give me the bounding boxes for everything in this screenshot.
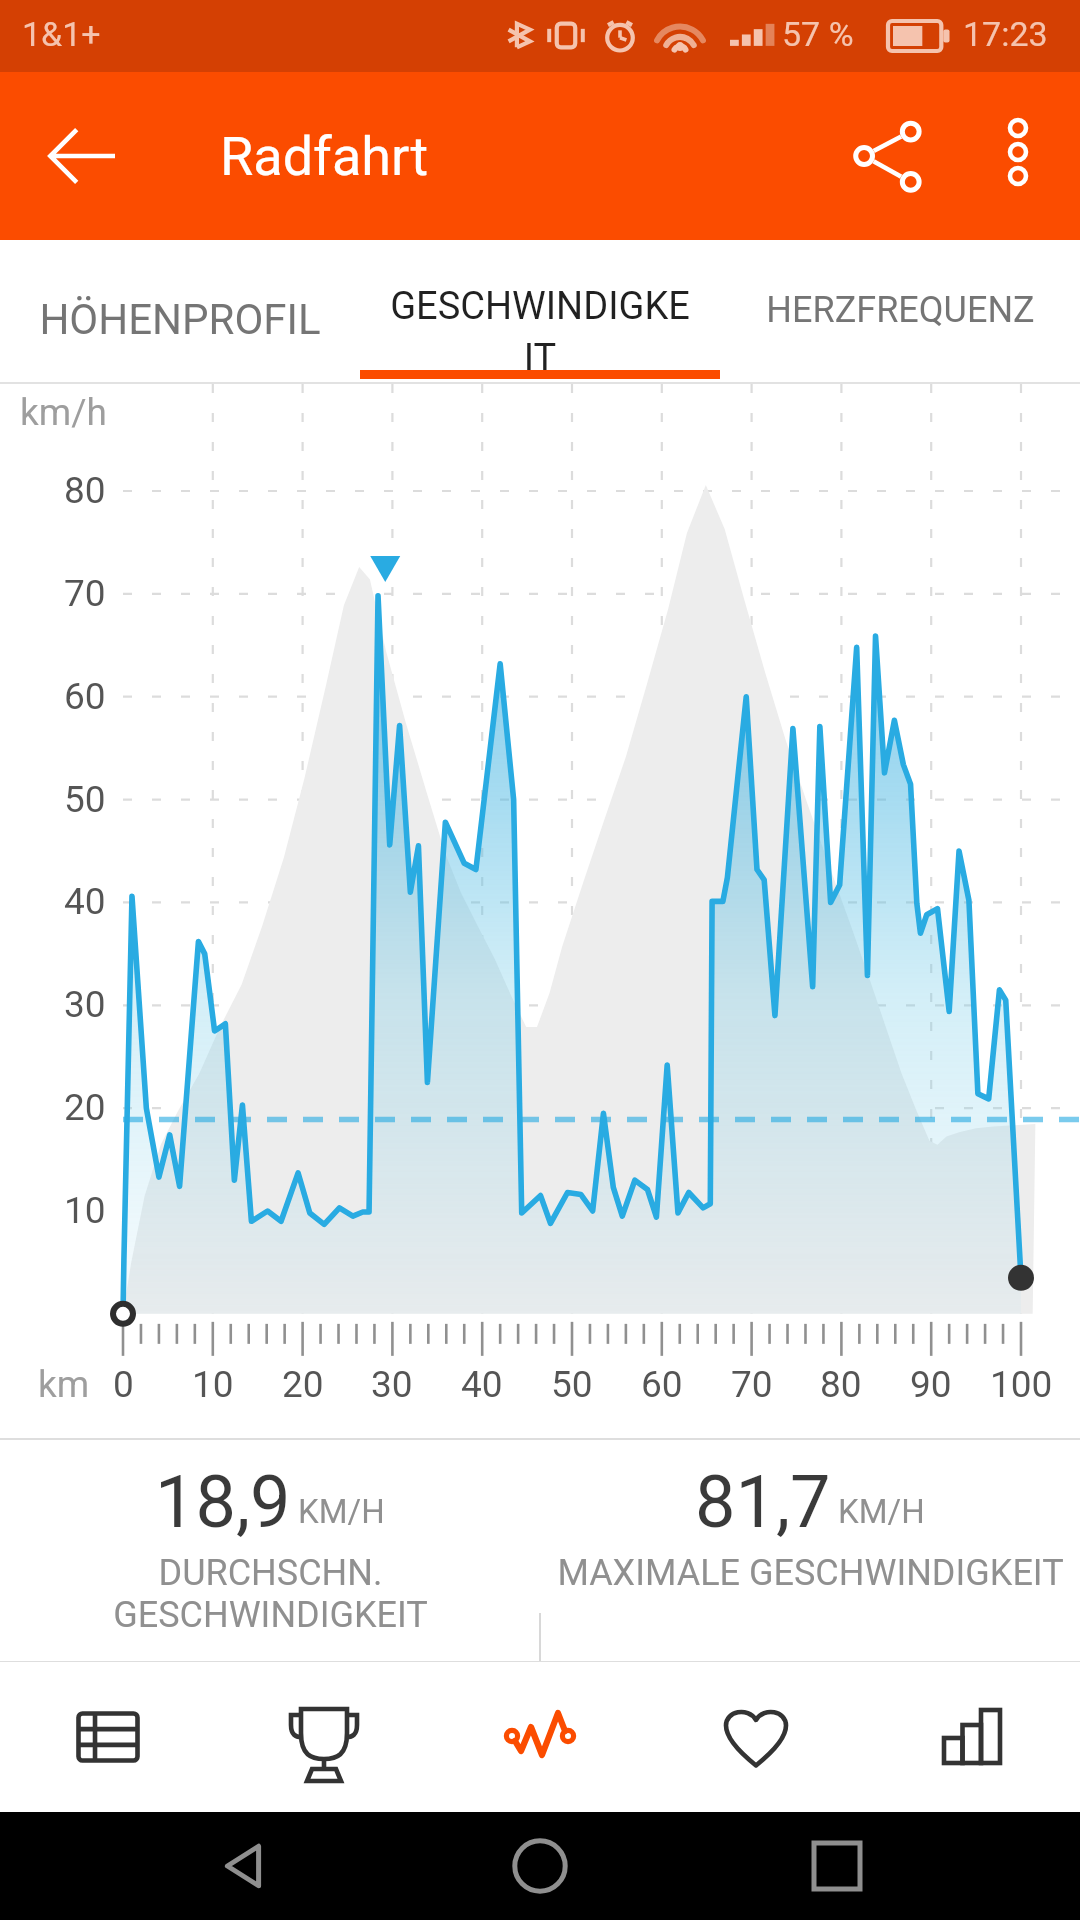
button[interactable]: Share [828, 72, 952, 240]
staticText: 30 [371, 1363, 413, 1406]
staticText: 70 [64, 572, 106, 615]
staticText: HÖHENPROFIL [39, 295, 321, 344]
button[interactable]: Back [28, 102, 136, 210]
staticText: 1&1+ [22, 14, 101, 54]
button[interactable]: 81,7 [540, 1460, 1080, 1594]
button[interactable]: GESCHWINDIGKE IT [360, 240, 720, 384]
staticText: 10 [192, 1363, 234, 1406]
staticText: HERZFREQUENZ [766, 289, 1035, 331]
staticText: DURCHSCHN. GESCHWINDIGKEIT [113, 1552, 428, 1636]
staticText: 17:23 [963, 14, 1048, 54]
staticText: km/h [20, 391, 107, 434]
staticText: 20 [282, 1363, 324, 1406]
button[interactable]: Achievements [216, 1661, 432, 1812]
button[interactable]: Overview list [0, 1661, 216, 1812]
staticText: 50 [64, 778, 106, 821]
staticText: 81,7 [695, 1460, 831, 1544]
staticText: KM/H [298, 1492, 385, 1531]
button[interactable]: Back [189, 1812, 297, 1920]
staticText: 100 [990, 1363, 1053, 1406]
button[interactable]: Recent apps [783, 1812, 891, 1920]
staticText: 18,9 [155, 1460, 291, 1544]
button[interactable]: HERZFREQUENZ [720, 240, 1080, 384]
button[interactable]: 18,9 [0, 1460, 540, 1636]
button[interactable]: Home [486, 1812, 594, 1920]
staticText: 0 [113, 1363, 134, 1406]
staticText: Radfahrt [220, 125, 429, 188]
button[interactable]: Heart rate [648, 1661, 864, 1812]
staticText: 90 [910, 1363, 952, 1406]
staticText: 40 [461, 1363, 503, 1406]
staticText: KM/H [838, 1492, 925, 1531]
staticText: 30 [64, 983, 106, 1026]
button[interactable]: HÖHENPROFIL [0, 240, 360, 384]
staticText: GESCHWINDIGKE IT [390, 284, 690, 380]
staticText: 60 [641, 1363, 683, 1406]
staticText: MAXIMALE GESCHWINDIGKEIT [557, 1552, 1064, 1594]
staticText: 70 [731, 1363, 773, 1406]
staticText: 57 % [782, 14, 854, 54]
staticText: 80 [820, 1363, 862, 1406]
staticText: 80 [64, 469, 106, 512]
staticText: 50 [551, 1363, 593, 1406]
staticText: 40 [64, 880, 106, 923]
staticText: 10 [64, 1189, 106, 1232]
staticText: 60 [64, 675, 106, 718]
button[interactable]: More options [956, 72, 1080, 240]
staticText: km [38, 1363, 90, 1406]
button[interactable]: Activity [432, 1661, 648, 1812]
staticText: 20 [64, 1086, 106, 1129]
button[interactable]: Statistics [864, 1661, 1080, 1812]
